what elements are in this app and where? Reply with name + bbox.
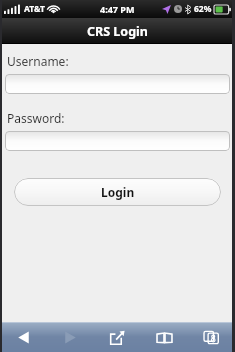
button[interactable]: Bookmarks: [141, 322, 188, 352]
button[interactable]: Forward: [47, 322, 94, 352]
staticText: 62%: [194, 3, 212, 15]
staticText: CRS Login: [87, 23, 148, 40]
button[interactable]: Tabs: [188, 322, 235, 352]
button[interactable]: [5, 131, 230, 151]
staticText: Password:: [7, 110, 65, 126]
staticText: AT&T: [24, 3, 45, 15]
staticText: Username:: [7, 53, 69, 69]
button[interactable]: Share: [94, 322, 141, 352]
staticText: 4:47 PM: [100, 3, 135, 15]
button[interactable]: Login: [14, 178, 221, 206]
button[interactable]: [5, 74, 230, 94]
staticText: Login: [101, 184, 135, 200]
button[interactable]: Back: [0, 322, 47, 352]
